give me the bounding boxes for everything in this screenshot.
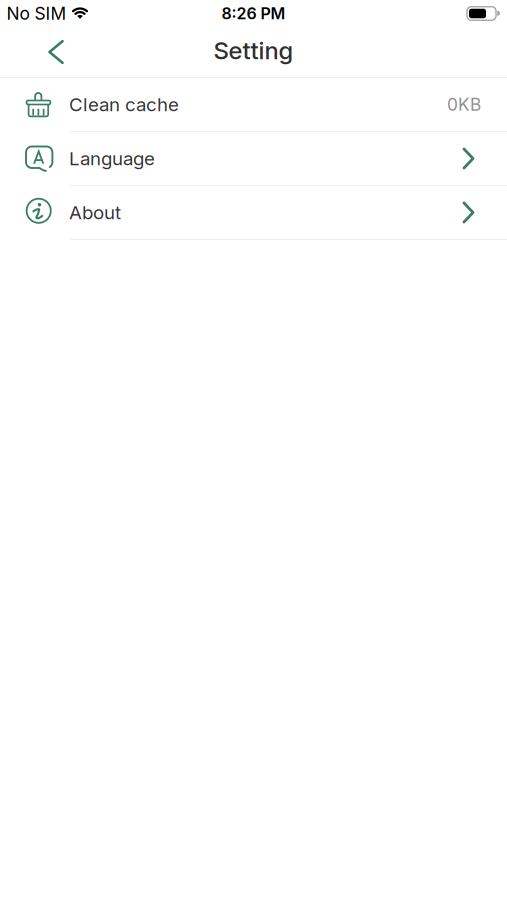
staticText: Clean cache (69, 93, 179, 115)
button[interactable]: Language (0, 132, 507, 186)
staticText: Setting (213, 36, 293, 65)
button[interactable]: About (0, 186, 507, 240)
staticText: No SIM (6, 3, 66, 24)
button[interactable]: Clean cache (0, 78, 507, 132)
staticText: Language (69, 147, 155, 169)
staticText: 0KB (447, 94, 481, 115)
staticText: About (69, 201, 121, 223)
staticText: 8:26 PM (221, 4, 285, 23)
button[interactable]: Back (36, 32, 76, 72)
